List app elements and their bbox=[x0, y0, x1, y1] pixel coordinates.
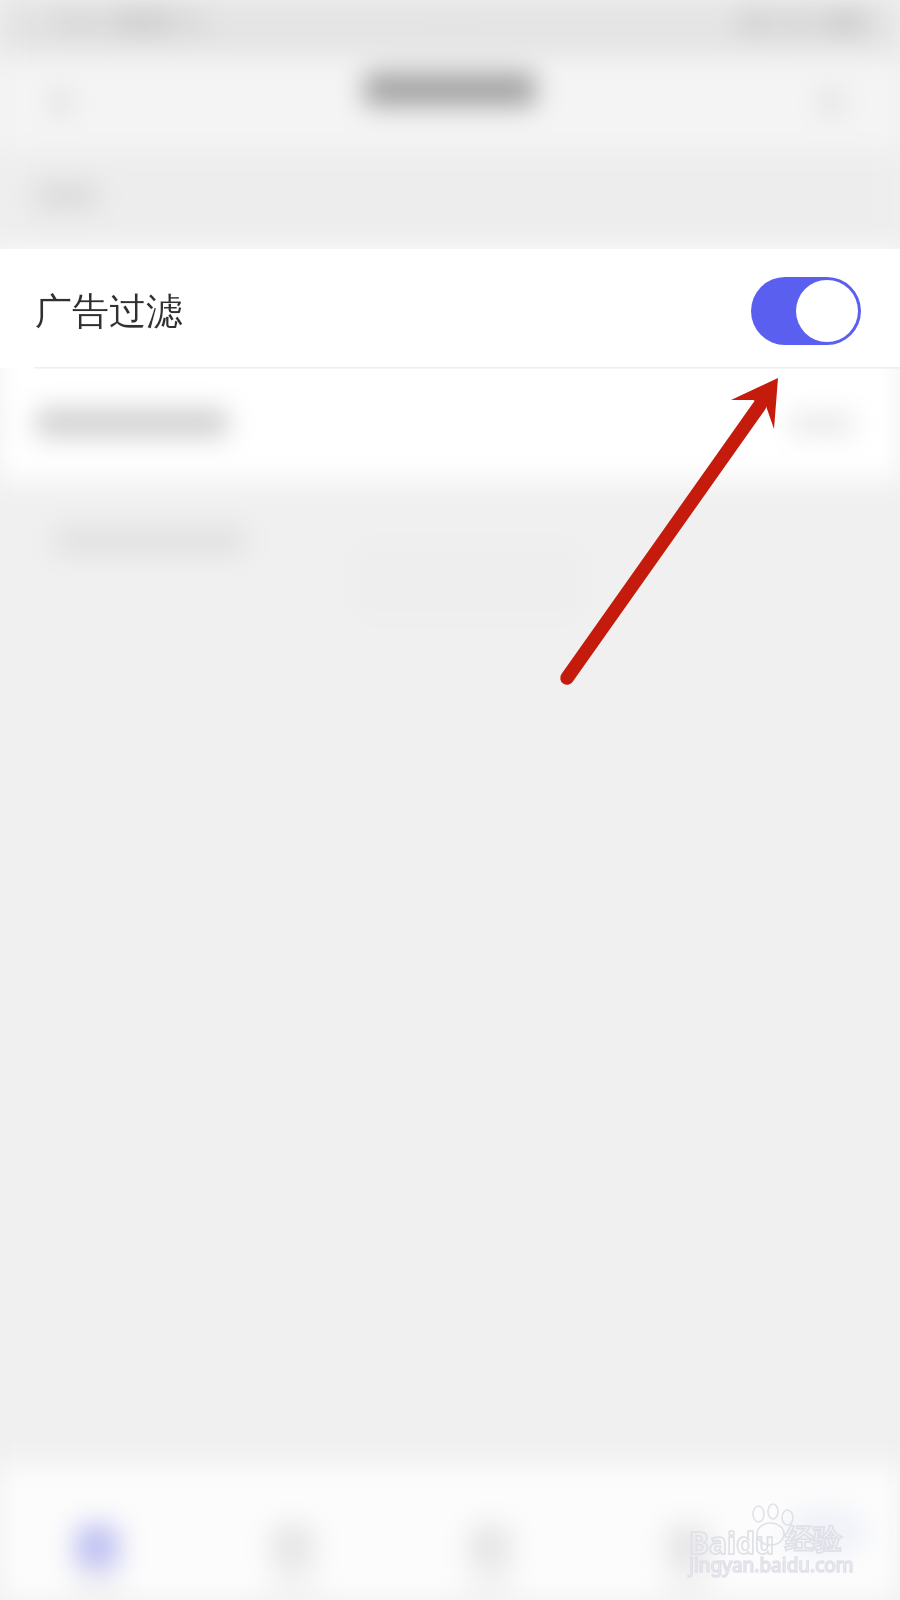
staticText: Baidu bbox=[689, 1522, 775, 1563]
staticText: jingyan.baidu.com bbox=[689, 1552, 854, 1578]
staticText: 广告过滤 bbox=[35, 288, 183, 335]
staticText: 经验 bbox=[785, 1522, 841, 1557]
button[interactable]: 广告过滤 开关，已开启 bbox=[751, 277, 861, 345]
button[interactable]: 广告过滤 bbox=[0, 250, 900, 368]
